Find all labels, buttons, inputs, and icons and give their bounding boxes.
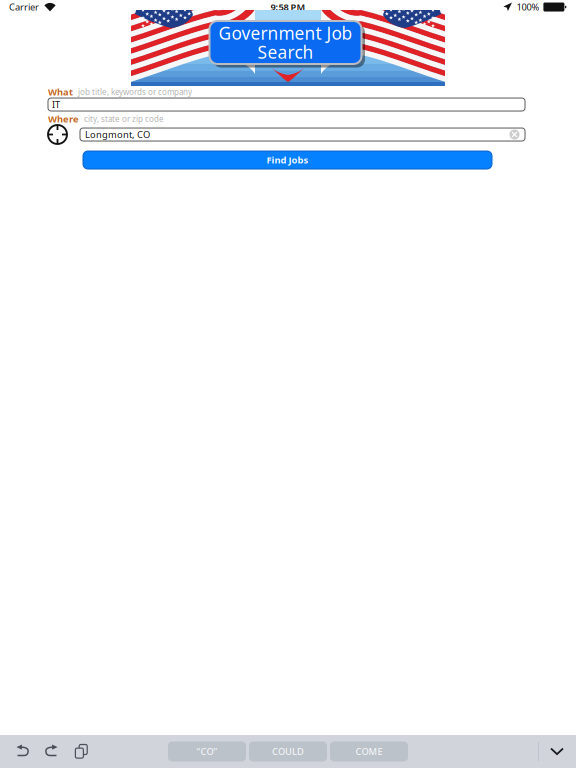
staticText: Search (257, 40, 313, 63)
staticText: COULD (272, 745, 304, 758)
button[interactable]: “CO” (168, 741, 246, 761)
staticText: Find Jobs (266, 154, 308, 166)
staticText: Where (48, 113, 79, 125)
staticText: 100% (516, 1, 539, 13)
button[interactable]: Undo (7, 738, 37, 764)
staticText: What (48, 86, 73, 98)
button[interactable]: Clear text (509, 129, 520, 140)
staticText: Longmont, CO (85, 128, 150, 141)
staticText: COME (355, 745, 382, 758)
staticText: IT (52, 98, 60, 111)
button[interactable]: Hide keyboard (539, 736, 575, 766)
button[interactable]: Redo (37, 738, 67, 764)
button[interactable]: Use current location (47, 124, 68, 145)
staticText: 9:58 PM (270, 1, 305, 13)
button[interactable]: COME (330, 741, 408, 761)
button[interactable]: Find Jobs (83, 151, 492, 169)
staticText: “CO” (196, 745, 217, 758)
staticText: Carrier (9, 1, 39, 13)
button[interactable]: COULD (249, 741, 327, 761)
staticText: Government Job (218, 21, 352, 44)
button[interactable]: Paste (67, 738, 95, 764)
staticText: city, state or zip code (84, 114, 164, 124)
staticText: job title, keywords or company (78, 87, 192, 97)
